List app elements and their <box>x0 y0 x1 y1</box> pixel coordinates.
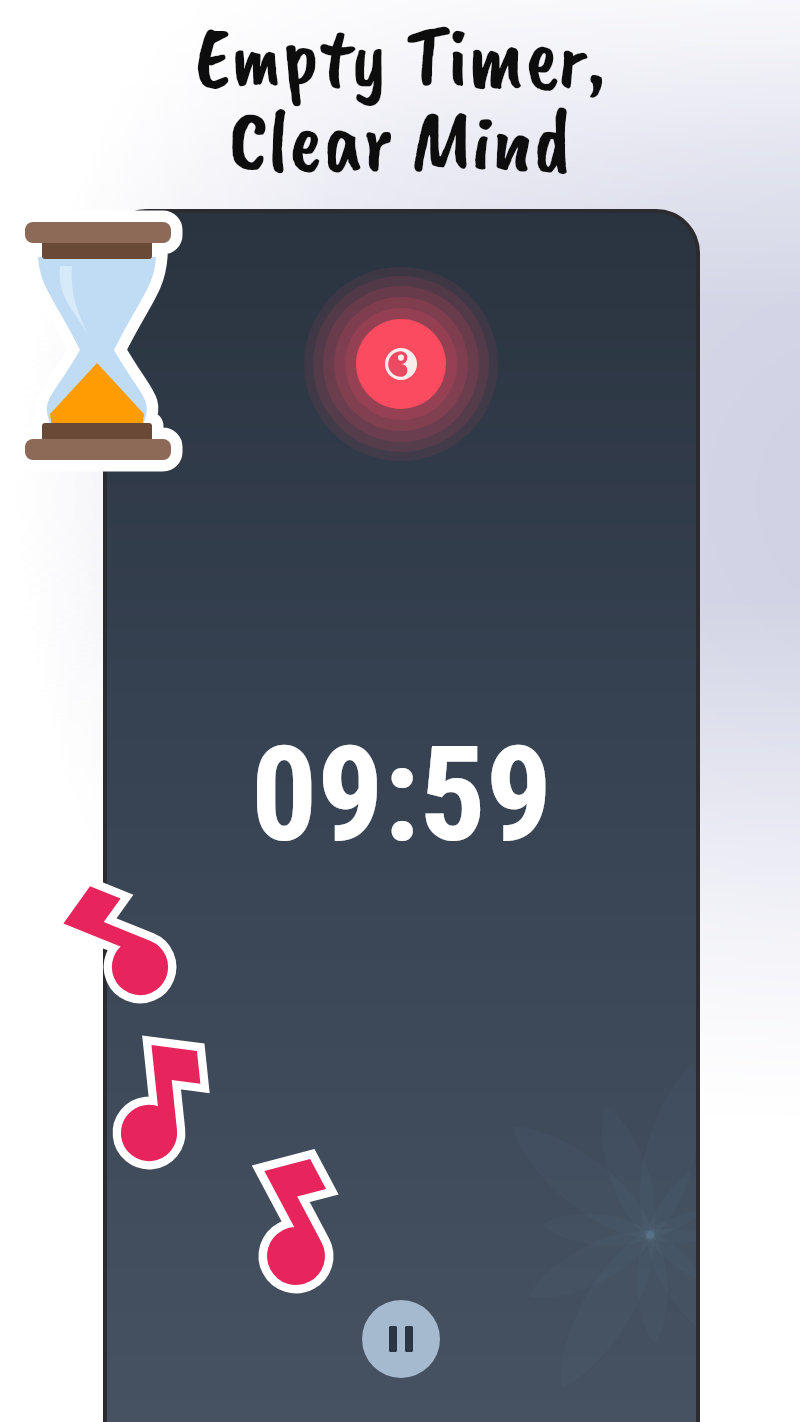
button[interactable]: Pause <box>362 1300 440 1378</box>
staticText: 09:59 <box>251 718 553 872</box>
staticText: Empty Timer, Clear Mind <box>195 2 605 196</box>
